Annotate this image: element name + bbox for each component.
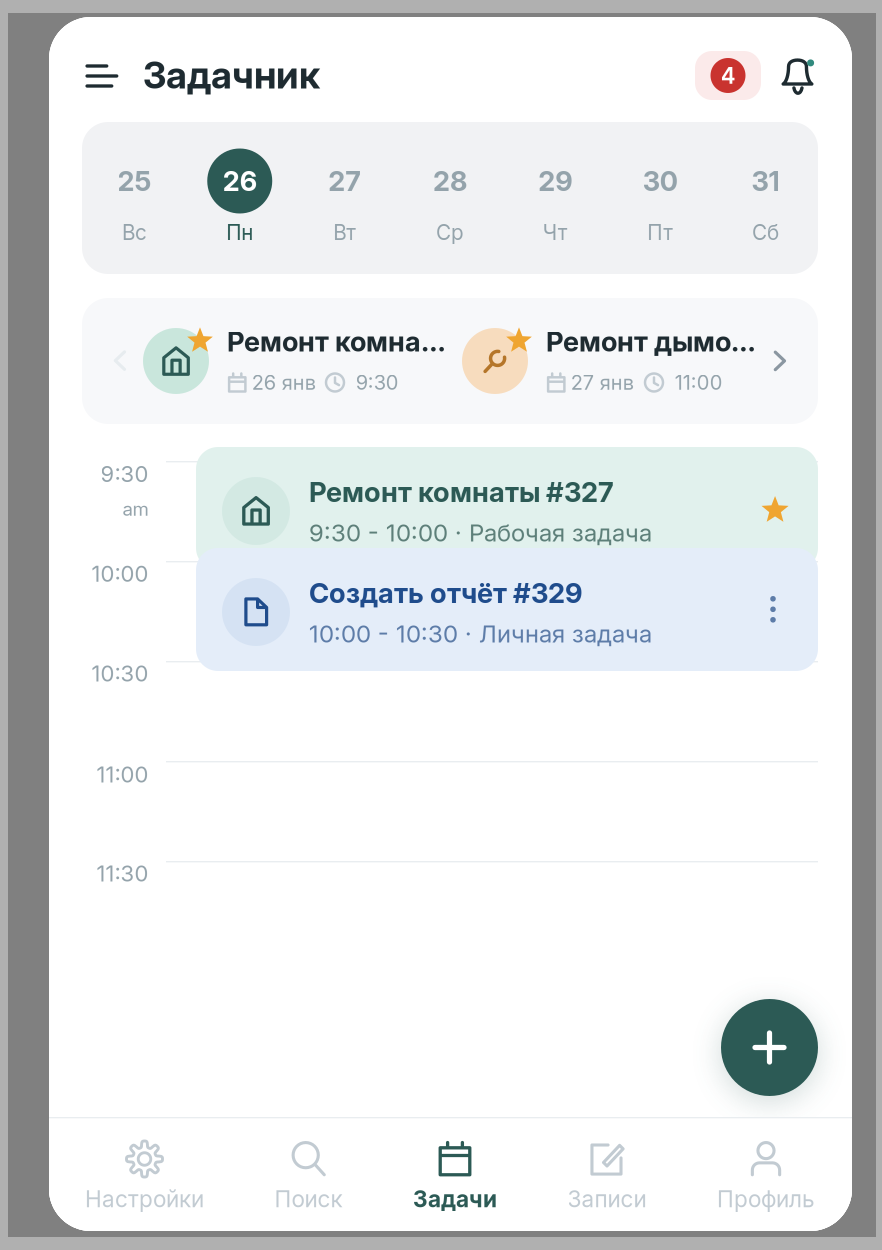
- staticText: 9:30 - 10:00 · Рабочая задача: [309, 518, 652, 547]
- staticText: 11:00: [96, 761, 148, 788]
- staticText: Вт: [333, 220, 356, 245]
- button[interactable]: Задачи: [413, 1117, 497, 1231]
- staticText: 26: [223, 164, 257, 198]
- button[interactable]: Меню: [80, 52, 128, 100]
- staticText: Ремонт комнаты #327: [309, 475, 614, 509]
- staticText: 26 янв: [252, 370, 316, 395]
- button[interactable]: 30: [608, 122, 713, 274]
- staticText: Ремонт комна…: [227, 325, 446, 358]
- staticText: Вс: [122, 220, 147, 245]
- staticText: am: [122, 498, 148, 520]
- staticText: Ср: [436, 220, 464, 245]
- button[interactable]: Поиск: [274, 1117, 342, 1231]
- staticText: 30: [643, 164, 678, 198]
- staticText: 27: [328, 164, 361, 198]
- button[interactable]: Ремонт комнаты #327: [196, 447, 818, 570]
- staticText: 10:00 - 10:30 · Личная задача: [309, 619, 652, 648]
- staticText: Пт: [647, 220, 673, 245]
- button[interactable]: 26: [187, 122, 292, 274]
- button[interactable]: Ремонт комна…: [143, 298, 433, 424]
- staticText: Задачи: [413, 1185, 497, 1213]
- button[interactable]: Вперёд: [763, 344, 797, 378]
- button[interactable]: 31: [713, 122, 818, 274]
- staticText: 31: [751, 164, 779, 198]
- staticText: 25: [118, 164, 152, 198]
- staticText: 29: [538, 164, 572, 198]
- button[interactable]: Добавить задачу: [721, 999, 818, 1096]
- button[interactable]: Настройки: [85, 1117, 204, 1231]
- staticText: 4: [720, 62, 735, 89]
- staticText: Создать отчёт #329: [309, 576, 583, 610]
- staticText: 11:30: [96, 860, 148, 887]
- staticText: 11:00: [675, 370, 723, 395]
- staticText: Сб: [752, 220, 779, 245]
- button[interactable]: Создать отчёт #329: [196, 548, 818, 671]
- staticText: 9:30: [356, 370, 399, 395]
- button[interactable]: 29: [503, 122, 608, 274]
- staticText: Чт: [543, 220, 568, 245]
- staticText: 9:30: [100, 461, 148, 487]
- staticText: Задачник: [143, 52, 320, 98]
- button[interactable]: 25: [82, 122, 187, 274]
- staticText: Ремонт дымо…: [546, 325, 756, 358]
- button[interactable]: Ещё: [753, 587, 793, 631]
- button[interactable]: Ремонт дымо…: [462, 298, 752, 424]
- button[interactable]: Профиль: [717, 1117, 815, 1231]
- staticText: Записи: [567, 1185, 646, 1213]
- button[interactable]: 28: [397, 122, 502, 274]
- staticText: 28: [433, 164, 467, 198]
- button[interactable]: Уведомления: [773, 51, 821, 99]
- button[interactable]: Назад: [103, 344, 137, 378]
- staticText: 10:30: [91, 660, 148, 687]
- staticText: 27 янв: [571, 370, 634, 395]
- staticText: Поиск: [274, 1185, 342, 1213]
- staticText: 10:00: [91, 560, 148, 587]
- button[interactable]: Записи: [567, 1117, 646, 1231]
- staticText: Пн: [226, 220, 253, 245]
- staticText: Настройки: [85, 1185, 204, 1213]
- button[interactable]: 27: [292, 122, 397, 274]
- staticText: Профиль: [717, 1185, 815, 1213]
- button[interactable]: Уведомления: 4: [695, 51, 761, 100]
